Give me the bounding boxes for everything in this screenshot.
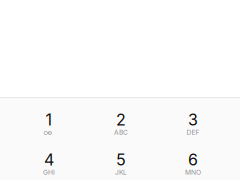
staticText: 6 <box>188 150 198 169</box>
staticText: GHI <box>43 168 55 176</box>
staticText: 4 <box>44 150 54 169</box>
staticText: 1 <box>45 110 52 129</box>
button[interactable]: 4 G H I <box>13 138 85 178</box>
button[interactable]: 2 A B C <box>85 98 157 138</box>
staticText: 3 <box>188 110 198 129</box>
button[interactable]: 1 voicemail <box>13 98 85 138</box>
staticText: MNO <box>185 168 201 176</box>
staticText: JKL <box>115 168 127 176</box>
button[interactable]: 5 J K L <box>85 138 157 178</box>
staticText: ABC <box>114 128 128 136</box>
button[interactable]: 6 M N O <box>157 138 229 178</box>
button[interactable]: 3 D E F <box>157 98 229 138</box>
staticText: 2 <box>116 110 126 129</box>
staticText: DEF <box>186 128 199 136</box>
staticText: 5 <box>116 150 126 169</box>
